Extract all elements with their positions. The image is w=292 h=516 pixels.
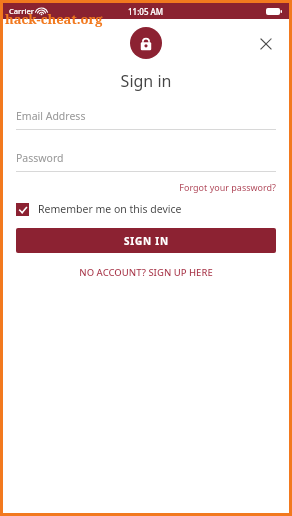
button[interactable]: Password — [16, 151, 276, 172]
button[interactable] — [130, 27, 162, 59]
staticText: Sign in — [3, 70, 289, 92]
button[interactable]: Forgot your password? — [179, 180, 276, 194]
staticText: NO ACCOUNT? SIGN UP HERE — [79, 266, 213, 279]
staticText: Email Address — [16, 109, 86, 123]
staticText: SIGN IN — [124, 234, 169, 248]
staticText: Carrier — [9, 6, 34, 16]
button[interactable]: SIGN IN — [16, 228, 276, 253]
staticText: 11:05 AM — [128, 6, 164, 17]
staticText: hack-cheat.org — [5, 10, 103, 28]
staticText: Password — [16, 151, 64, 165]
button[interactable]: Close — [253, 31, 279, 57]
button[interactable]: Remember me on this device — [16, 202, 276, 216]
button[interactable]: Email Address — [16, 109, 276, 130]
staticText: Remember me on this device — [38, 202, 182, 216]
staticText: Forgot your password? — [179, 181, 276, 193]
button[interactable]: NO ACCOUNT? SIGN UP HERE — [16, 266, 276, 279]
